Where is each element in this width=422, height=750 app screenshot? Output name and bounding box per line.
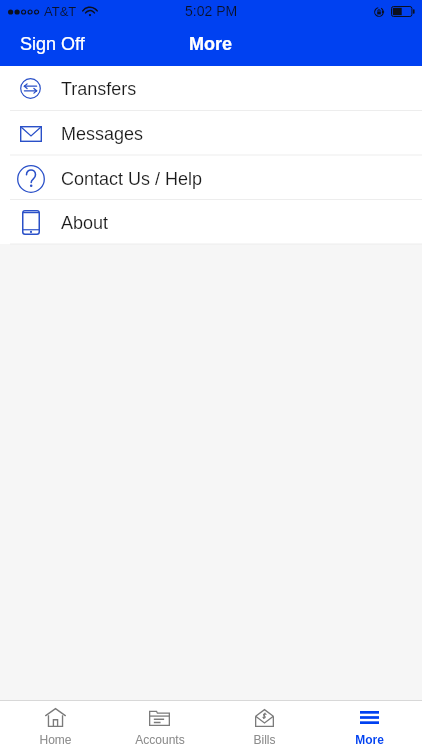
- staticText: More: [355, 733, 384, 746]
- staticText: Accounts: [135, 733, 185, 746]
- staticText: AT&T: [44, 4, 77, 19]
- button[interactable]: More: [317, 701, 422, 750]
- button[interactable]: About: [0, 201, 422, 244]
- button[interactable]: Transfers: [0, 66, 422, 111]
- staticText: Sign Off: [20, 34, 85, 54]
- staticText: Transfers: [61, 79, 137, 99]
- button[interactable]: Messages: [0, 111, 422, 156]
- button[interactable]: Sign Off: [0, 26, 105, 62]
- button[interactable]: Home: [3, 701, 107, 750]
- staticText: Bills: [253, 733, 276, 746]
- staticText: More: [189, 34, 233, 54]
- staticText: Home: [39, 733, 72, 746]
- staticText: 5:02 PM: [185, 3, 238, 19]
- button[interactable]: Contact Us / Help: [0, 156, 422, 201]
- staticText: Messages: [61, 124, 144, 144]
- button[interactable]: Accounts: [107, 701, 212, 750]
- button[interactable]: Bills: [212, 701, 317, 750]
- staticText: Contact Us / Help: [61, 169, 203, 189]
- staticText: About: [61, 213, 109, 233]
